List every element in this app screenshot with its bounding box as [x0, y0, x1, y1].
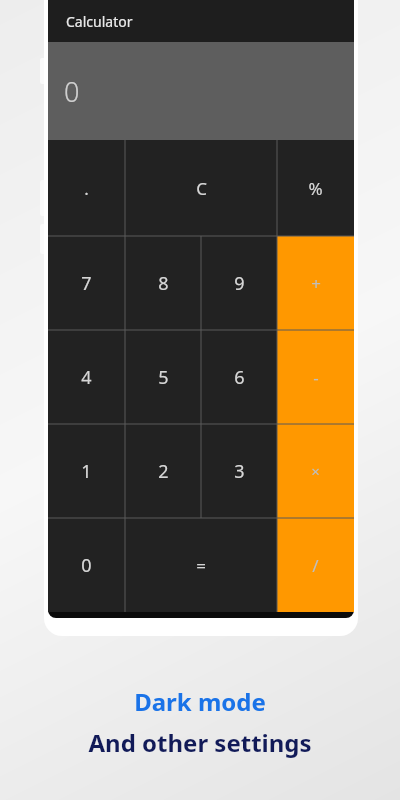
button[interactable]: 3 — [201, 424, 277, 518]
staticText: 5 — [158, 365, 169, 390]
button[interactable]: 0 — [48, 518, 125, 612]
button[interactable]: + — [277, 236, 354, 330]
staticText: 1 — [81, 459, 92, 484]
staticText: + — [311, 272, 321, 295]
staticText: 0 — [81, 553, 92, 578]
staticText: Calculator — [66, 12, 133, 31]
staticText: C — [196, 177, 207, 200]
staticText: 9 — [234, 271, 245, 296]
button[interactable]: 4 — [48, 330, 125, 424]
staticText: × — [311, 461, 320, 481]
staticText: % — [308, 177, 323, 200]
button[interactable]: - — [277, 330, 354, 424]
button[interactable]: 2 — [125, 424, 201, 518]
staticText: 0 — [64, 73, 80, 110]
staticText: 2 — [158, 459, 169, 484]
button[interactable]: × — [277, 424, 354, 518]
button[interactable]: 5 — [125, 330, 201, 424]
staticText: And other settings — [88, 726, 312, 759]
staticText: / — [312, 554, 319, 577]
button[interactable]: 1 — [48, 424, 125, 518]
staticText: 6 — [234, 365, 245, 390]
button[interactable]: 9 — [201, 236, 277, 330]
button[interactable]: / — [277, 518, 354, 612]
staticText: . — [84, 177, 89, 200]
button[interactable]: % — [277, 140, 354, 236]
staticText: - — [313, 366, 319, 389]
button[interactable]: 0 — [48, 42, 354, 140]
button[interactable]: = — [125, 518, 277, 612]
staticText: Dark mode — [134, 685, 266, 718]
button[interactable]: 7 — [48, 236, 125, 330]
staticText: 4 — [81, 365, 92, 390]
button[interactable]: . — [48, 140, 125, 236]
button[interactable]: 8 — [125, 236, 201, 330]
staticText: = — [196, 554, 206, 577]
button[interactable]: 6 — [201, 330, 277, 424]
staticText: 3 — [234, 459, 245, 484]
button[interactable]: C — [125, 140, 277, 236]
staticText: 8 — [158, 271, 169, 296]
staticText: 7 — [81, 271, 92, 296]
